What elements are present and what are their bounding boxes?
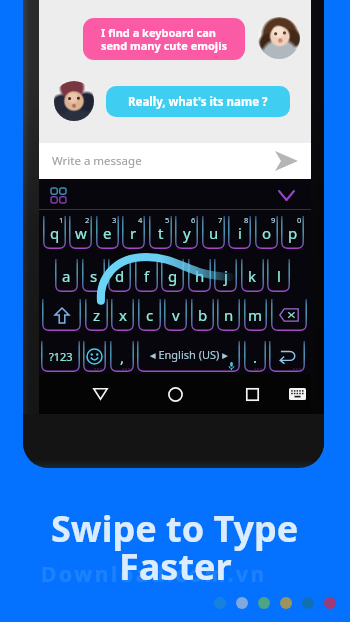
button[interactable]: [271, 299, 307, 331]
button[interactable]: b: [191, 299, 214, 331]
staticText: .: [253, 347, 258, 367]
button[interactable]: [42, 299, 81, 331]
staticText: r: [130, 223, 137, 243]
button[interactable]: r: [122, 216, 145, 249]
staticText: 7: [218, 215, 223, 225]
staticText: h: [195, 266, 205, 286]
button[interactable]: h: [188, 259, 211, 292]
staticText: ,: [120, 347, 125, 367]
button[interactable]: d: [108, 259, 131, 292]
button[interactable]: ?123: [41, 341, 80, 372]
button[interactable]: e: [96, 216, 119, 249]
staticText: s: [90, 266, 98, 286]
staticText: Swipe to Type: [51, 504, 299, 553]
staticText: u: [209, 223, 219, 243]
button[interactable]: k: [241, 259, 264, 292]
button[interactable]: t: [149, 216, 172, 249]
staticText: j: [224, 266, 228, 286]
button[interactable]: Switch keyboard: [285, 374, 309, 414]
button[interactable]: f: [135, 259, 158, 292]
button[interactable]: q: [43, 216, 66, 249]
button[interactable]: Recents: [240, 374, 264, 414]
button[interactable]: i: [228, 216, 251, 249]
staticText: 4: [138, 215, 143, 225]
button[interactable]: p: [281, 216, 304, 249]
staticText: g: [168, 266, 178, 286]
staticText: q: [50, 223, 60, 243]
button[interactable]: .: [244, 341, 266, 372]
button[interactable]: m: [244, 299, 267, 331]
button[interactable]: ,: [110, 341, 134, 372]
button[interactable]: [83, 341, 106, 372]
staticText: z: [93, 305, 101, 325]
staticText: t: [158, 223, 164, 243]
staticText: Download.com.vn: [41, 560, 267, 589]
button[interactable]: g: [161, 259, 184, 292]
button[interactable]: I find a keyboard can send many cute emo…: [83, 18, 245, 60]
button[interactable]: [269, 341, 305, 372]
staticText: n: [224, 305, 234, 325]
staticText: ?123: [49, 349, 73, 364]
staticText: a: [62, 266, 71, 286]
staticText: 0: [297, 215, 302, 225]
staticText: 2: [85, 215, 90, 225]
staticText: p: [288, 223, 298, 243]
staticText: Write a message: [52, 153, 142, 169]
button[interactable]: o: [255, 216, 278, 249]
staticText: w: [75, 223, 87, 243]
staticText: Faster: [119, 542, 232, 591]
button[interactable]: x: [111, 299, 134, 331]
button[interactable]: y: [175, 216, 198, 249]
staticText: 5: [165, 215, 170, 225]
button[interactable]: w: [69, 216, 92, 249]
staticText: o: [262, 223, 272, 243]
button[interactable]: s: [82, 259, 105, 292]
staticText: 1: [59, 215, 64, 225]
button[interactable]: Home: [163, 374, 187, 414]
button[interactable]: ◂ English (US) ▸: [137, 341, 240, 372]
button[interactable]: Send: [272, 147, 300, 175]
staticText: l: [277, 266, 281, 286]
button[interactable]: Hide keyboard: [272, 181, 300, 209]
button[interactable]: a: [55, 259, 78, 292]
staticText: b: [198, 305, 208, 325]
button[interactable]: l: [267, 259, 290, 292]
button[interactable]: z: [85, 299, 108, 331]
staticText: k: [248, 266, 257, 286]
staticText: Really, what's its name ?: [128, 94, 268, 110]
staticText: 3: [112, 215, 117, 225]
button[interactable]: Back: [88, 374, 112, 414]
button[interactable]: Really, what's its name ?: [106, 86, 290, 117]
staticText: x: [119, 305, 127, 325]
staticText: m: [248, 305, 263, 325]
staticText: y: [183, 223, 191, 243]
staticText: 8: [244, 215, 249, 225]
staticText: 9: [271, 215, 276, 225]
button[interactable]: j: [214, 259, 237, 292]
button[interactable]: u: [202, 216, 225, 249]
staticText: v: [172, 305, 180, 325]
staticText: f: [144, 266, 150, 286]
button[interactable]: c: [138, 299, 161, 331]
staticText: 6: [191, 215, 196, 225]
staticText: I find a keyboard can send many cute emo…: [101, 25, 227, 53]
button[interactable]: Apps: [45, 182, 71, 208]
staticText: d: [115, 266, 125, 286]
staticText: c: [146, 305, 154, 325]
button[interactable]: v: [164, 299, 187, 331]
button[interactable]: n: [217, 299, 240, 331]
staticText: ◂ English (US) ▸: [150, 347, 228, 362]
staticText: i: [238, 223, 242, 243]
staticText: e: [103, 223, 112, 243]
